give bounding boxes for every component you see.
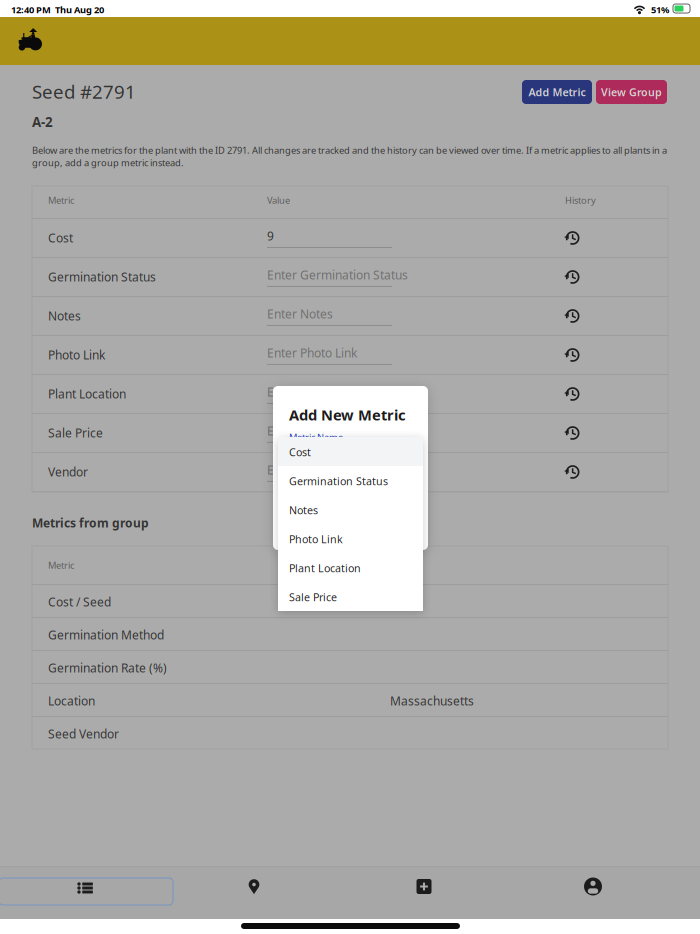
button[interactable]: Add	[404, 873, 444, 900]
button[interactable]: View Group	[596, 80, 667, 104]
staticText: Thu Aug 20	[55, 3, 104, 16]
button[interactable]: Photo Link	[278, 524, 423, 553]
staticText: Massachusetts	[390, 693, 474, 709]
button[interactable]: Map	[234, 873, 274, 900]
staticText: Vendor	[48, 464, 88, 480]
staticText: Germination Status	[48, 269, 156, 285]
button[interactable]: Account	[573, 873, 613, 900]
staticText: Photo Link	[48, 347, 105, 363]
staticText: Germination Method	[48, 627, 164, 643]
staticText: Enter Vendor	[267, 462, 340, 478]
staticText: History	[565, 194, 596, 206]
staticText: Below are the metrics for the plant with…	[32, 144, 667, 169]
staticText: Cost	[289, 445, 311, 459]
staticText: Enter Sale Price	[267, 423, 355, 439]
staticText: Seed Vendor	[48, 726, 119, 742]
button[interactable]: Records list	[0, 878, 173, 905]
button[interactable]: Add Metric	[522, 80, 592, 104]
staticText: 9	[267, 228, 274, 244]
staticText: Value	[267, 194, 290, 206]
staticText: 12:40 PM	[11, 3, 51, 16]
staticText: Cost	[48, 230, 73, 246]
staticText: Germination Rate (%)	[48, 660, 167, 676]
button[interactable]: Plant Location	[278, 553, 423, 582]
staticText: Cost / Seed	[48, 594, 111, 610]
staticText: Notes	[48, 308, 81, 324]
staticText: Metric	[48, 559, 74, 571]
staticText: A-2	[32, 113, 53, 131]
staticText: Enter Plant Location	[267, 384, 378, 400]
staticText: Metrics from group	[32, 515, 149, 531]
button[interactable]: Home	[0, 17, 24, 40]
staticText: 51%	[651, 3, 669, 16]
staticText: Sale Price	[289, 590, 337, 604]
staticText: View Group	[601, 85, 662, 99]
button[interactable]: Germination Status	[278, 466, 423, 495]
staticText: Location	[48, 693, 95, 709]
button[interactable]: Notes	[278, 495, 423, 524]
staticText: Plant Location	[289, 561, 361, 575]
staticText: Metric Name	[289, 431, 343, 443]
staticText: Seed #2791	[32, 79, 136, 104]
staticText: Enter Photo Link	[267, 345, 357, 361]
staticText: Notes	[289, 503, 318, 517]
staticText: Plant Location	[48, 386, 126, 402]
staticText: Add New Metric	[289, 405, 406, 424]
button[interactable]: Sale Price	[278, 582, 423, 611]
staticText: Add Metric	[528, 85, 585, 99]
staticText: Enter Notes	[267, 306, 333, 322]
button[interactable]: Cost	[278, 437, 423, 466]
staticText: Sale Price	[48, 425, 103, 441]
staticText: Germination Status	[289, 474, 388, 488]
staticText: Metric	[48, 194, 74, 206]
staticText: Enter Germination Status	[267, 267, 408, 283]
staticText: Photo Link	[289, 532, 343, 546]
